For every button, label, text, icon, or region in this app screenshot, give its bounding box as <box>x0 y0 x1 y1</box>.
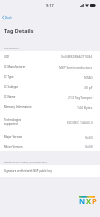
staticText: Back <box>5 16 12 20</box>
staticText: IC Type <box>4 75 14 79</box>
staticText: Major Version <box>4 135 23 139</box>
staticText: 0x03 <box>85 135 93 140</box>
staticText: 0x0488288ACF1084 <box>61 54 93 59</box>
staticText: TAG DETAILS <box>4 46 20 49</box>
staticText: Technologies supported <box>4 118 22 126</box>
staticText: 144 Bytes <box>77 105 93 110</box>
staticText: 30 pF <box>84 85 93 90</box>
staticText: NTAG <box>84 75 93 80</box>
staticText: Signature verified with NXP public key <box>4 169 52 173</box>
button[interactable]: IC Type <box>0 72 100 82</box>
staticText: Minor Version <box>4 145 23 149</box>
staticText: IC Subtype <box>4 85 19 89</box>
staticText: 9:17 <box>46 3 54 8</box>
staticText: P <box>92 196 95 206</box>
staticText: 0x00 <box>85 144 93 149</box>
staticText: N <box>79 196 86 206</box>
button[interactable]: Major Version <box>0 132 100 142</box>
staticText: ORIGINALITY CHECK (ASYMMETRIC) <box>4 160 47 163</box>
button[interactable]: IC Manufacturer <box>0 62 100 72</box>
staticText: IC Manufacturer <box>4 65 26 69</box>
button[interactable]: IC Subtype <box>0 82 100 92</box>
button[interactable]: Memory Information <box>0 102 100 112</box>
button[interactable]: Minor Version <box>0 142 100 151</box>
staticText: UID <box>4 55 10 59</box>
button[interactable]: Signature verified with NXP public key <box>0 165 100 177</box>
staticText: Tag Details <box>4 27 34 34</box>
button[interactable]: Back <box>0 13 100 22</box>
button[interactable]: UID <box>0 51 100 62</box>
button[interactable]: Technologies supported <box>0 112 100 132</box>
staticText: Memory Information <box>4 105 32 109</box>
staticText: NXP Semiconductors <box>59 65 93 70</box>
staticText: ISO/IEC 14443-3 <box>67 120 93 125</box>
staticText: IC Name <box>4 95 16 99</box>
staticText: 213 TagTamper <box>68 95 93 100</box>
button[interactable]: IC Name <box>0 92 100 102</box>
staticText: X <box>86 196 92 206</box>
